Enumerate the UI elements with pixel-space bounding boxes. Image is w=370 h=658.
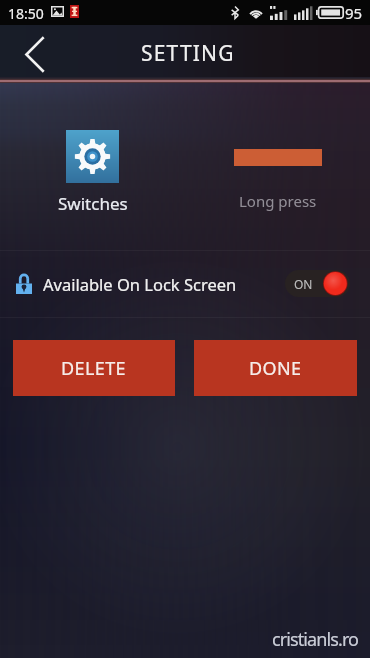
- staticText: 18:50: [8, 4, 44, 23]
- staticText: cristianls.ro: [272, 627, 359, 652]
- staticText: SETTING: [141, 39, 235, 68]
- button[interactable]: Back: [0, 26, 68, 82]
- button[interactable]: Long press: [185, 83, 370, 250]
- staticText: 95: [345, 3, 363, 23]
- button[interactable]: DELETE: [13, 340, 175, 396]
- staticText: ON: [294, 276, 313, 292]
- button[interactable]: DONE: [194, 340, 357, 396]
- staticText: Switches: [58, 192, 128, 215]
- staticText: DELETE: [61, 356, 127, 381]
- staticText: DONE: [249, 356, 302, 381]
- button[interactable]: Available On Lock Screen: [0, 250, 370, 317]
- staticText: Available On Lock Screen: [43, 273, 237, 295]
- button[interactable]: Switches: [0, 83, 185, 250]
- staticText: Long press: [239, 191, 317, 211]
- button[interactable]: Available on lock screen toggle: [285, 270, 350, 297]
